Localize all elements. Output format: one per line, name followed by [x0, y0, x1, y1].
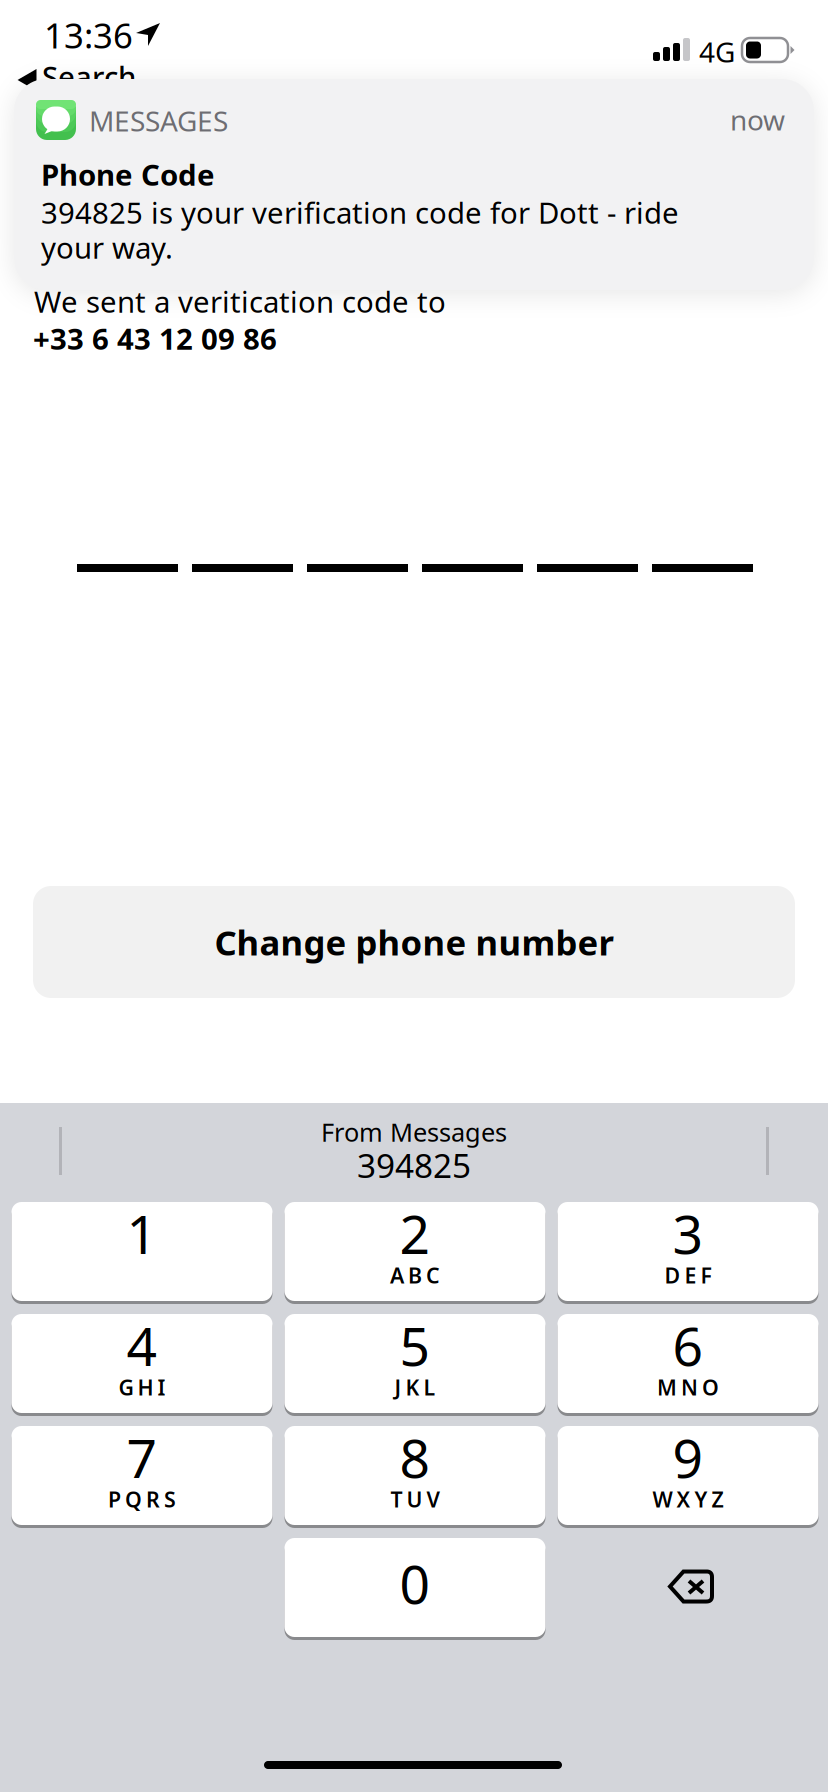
- button[interactable]: 6: [557, 1314, 818, 1413]
- staticText: We sent a veritication code to: [34, 282, 446, 321]
- staticText: your way.: [41, 228, 173, 267]
- staticText: TUV: [390, 1485, 439, 1513]
- staticText: Phone Code: [41, 155, 215, 194]
- button[interactable]: 9: [557, 1426, 818, 1525]
- staticText: Search: [42, 57, 136, 96]
- staticText: WXYZ: [652, 1485, 723, 1513]
- button[interactable]: Search: [11, 53, 142, 100]
- button[interactable]: 4: [11, 1314, 272, 1413]
- staticText: 4G: [699, 33, 735, 70]
- staticText: MESSAGES: [89, 102, 228, 139]
- staticText: 9: [672, 1422, 703, 1493]
- staticText: ABC: [390, 1261, 440, 1289]
- staticText: DEF: [664, 1261, 711, 1289]
- button[interactable]: 2: [284, 1202, 545, 1301]
- staticText: 5: [399, 1310, 430, 1381]
- staticText: JKL: [394, 1373, 435, 1401]
- staticText: 0: [399, 1548, 430, 1619]
- staticText: 8: [399, 1422, 430, 1493]
- button[interactable]: Delete: [557, 1538, 818, 1637]
- button[interactable]: 5: [284, 1314, 545, 1413]
- staticText: 4: [126, 1310, 157, 1381]
- button[interactable]: 0: [284, 1538, 545, 1637]
- button[interactable]: 3: [557, 1202, 818, 1301]
- staticText: 1: [126, 1198, 157, 1269]
- staticText: GHI: [118, 1373, 165, 1401]
- staticText: +33 6 43 12 09 86: [33, 319, 277, 358]
- button[interactable]: 1: [11, 1202, 272, 1301]
- staticText: From Messages: [321, 1115, 507, 1149]
- staticText: 3: [672, 1198, 703, 1269]
- staticText: 13:36: [44, 12, 133, 58]
- staticText: MNO: [657, 1373, 719, 1401]
- button[interactable]: 7: [11, 1426, 272, 1525]
- staticText: 2: [399, 1198, 430, 1269]
- staticText: 7: [126, 1422, 157, 1493]
- staticText: 6: [672, 1310, 703, 1381]
- button[interactable]: 8: [284, 1426, 545, 1525]
- button[interactable]: Change phone number: [33, 886, 795, 998]
- staticText: 394825: [357, 1143, 471, 1187]
- staticText: PQRS: [108, 1485, 176, 1513]
- button[interactable]: From Messages: [134, 1118, 694, 1198]
- staticText: 394825 is your verification code for Dot…: [41, 193, 679, 232]
- staticText: Change phone number: [214, 919, 613, 965]
- staticText: now: [730, 101, 785, 138]
